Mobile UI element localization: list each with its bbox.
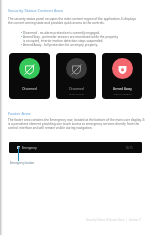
staticText: Security Status & Footer Area | Section …	[86, 218, 141, 222]
staticText: is a persistent element providing one to…	[8, 122, 140, 126]
staticText: The footer area contains the Emergency r…	[8, 118, 145, 122]
button[interactable]: Disarmed	[9, 53, 50, 99]
other: Armed	[118, 65, 127, 74]
button[interactable]: Disarmed	[56, 53, 96, 99]
staticText: Armed Away - full protection for an empt…	[23, 43, 118, 47]
staticText: Disarmed	[69, 87, 84, 91]
staticText: control interface and will remain visibl…	[8, 126, 93, 130]
other: Disarmed	[25, 65, 34, 74]
staticText: the current arming state and provides qu…	[8, 21, 105, 25]
staticText: Footer Area	[8, 111, 31, 117]
staticText: Disarmed - no alarm protection is curren…	[23, 31, 118, 35]
other: Emergency	[17, 146, 20, 149]
staticText: Emergency	[22, 146, 37, 150]
staticText: 06:15	[126, 146, 133, 150]
other: Disarmed	[72, 65, 81, 74]
staticText: The security status panel occupies the m…	[8, 17, 137, 21]
staticText: Security Status Content Area	[8, 8, 63, 14]
staticText: Emergency button	[10, 161, 35, 165]
staticText: Press to arm	[69, 92, 84, 95]
button[interactable]: Emergency	[9, 142, 142, 153]
staticText: Armed Away	[113, 87, 132, 91]
button[interactable]: Armed	[102, 53, 142, 99]
staticText: Press to disarm	[113, 92, 132, 95]
staticText: Armed Stay - perimeter sensors are monit…	[23, 35, 118, 43]
staticText: Disarmed	[22, 87, 37, 91]
